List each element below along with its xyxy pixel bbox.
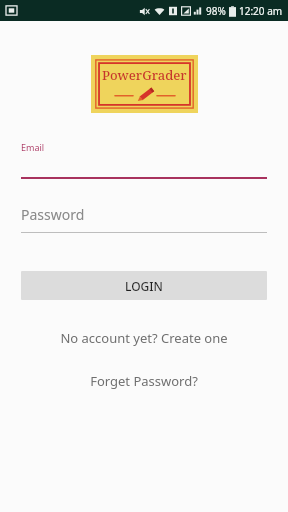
staticText: LOGIN bbox=[125, 278, 163, 294]
button[interactable]: Email bbox=[0, 141, 288, 179]
staticText: PowerGrader bbox=[102, 66, 187, 84]
staticText: Forget Password? bbox=[90, 372, 198, 390]
staticText: 98% bbox=[206, 4, 226, 18]
button[interactable]: Password bbox=[0, 205, 288, 233]
button[interactable]: No account yet? Create one bbox=[0, 327, 288, 349]
button[interactable]: Forget Password? bbox=[0, 370, 288, 392]
staticText: Email bbox=[21, 141, 45, 153]
staticText: Password bbox=[21, 205, 85, 224]
staticText: 12:20 am bbox=[239, 4, 283, 18]
staticText: No account yet? Create one bbox=[60, 329, 228, 347]
button[interactable]: LOGIN bbox=[21, 271, 267, 300]
